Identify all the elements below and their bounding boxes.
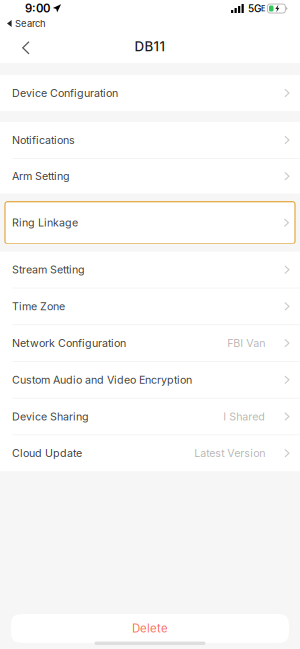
staticText: Delete — [132, 622, 168, 635]
staticText: Notifications — [12, 133, 75, 146]
staticText: Time Zone — [12, 300, 65, 313]
button[interactable]: Device Sharing — [0, 398, 300, 434]
staticText: Ring Linkage — [12, 216, 78, 229]
staticText: I Shared — [223, 410, 265, 423]
staticText: 5G — [248, 2, 261, 15]
button[interactable]: Back — [0, 30, 44, 63]
staticText: Custom Audio and Video Encryption — [12, 373, 192, 386]
staticText: Cloud Update — [12, 447, 82, 460]
button[interactable]: Ring Linkage — [0, 202, 300, 244]
button[interactable]: Delete — [0, 614, 300, 643]
button[interactable]: Device Configuration — [0, 75, 300, 111]
button[interactable]: Notifications — [0, 122, 300, 158]
staticText: 9:00 — [25, 2, 50, 15]
staticText: Network Configuration — [12, 337, 126, 349]
button[interactable]: Stream Setting — [0, 252, 300, 288]
button[interactable]: Custom Audio and Video Encryption — [0, 362, 300, 398]
staticText: Search — [15, 18, 46, 29]
staticText: Latest Version — [194, 447, 265, 460]
staticText: Device Configuration — [12, 86, 118, 99]
staticText: Stream Setting — [12, 263, 85, 276]
staticText: DB11 — [134, 38, 165, 54]
button[interactable]: Network Configuration — [0, 325, 300, 361]
button[interactable]: Time Zone — [0, 288, 300, 324]
staticText: Device Sharing — [12, 410, 89, 423]
staticText: FBI Van — [227, 337, 265, 349]
staticText: Arm Setting — [12, 170, 70, 183]
button[interactable]: Arm Setting — [0, 159, 300, 194]
staticText: E — [261, 4, 265, 13]
button[interactable]: Cloud Update — [0, 435, 300, 471]
